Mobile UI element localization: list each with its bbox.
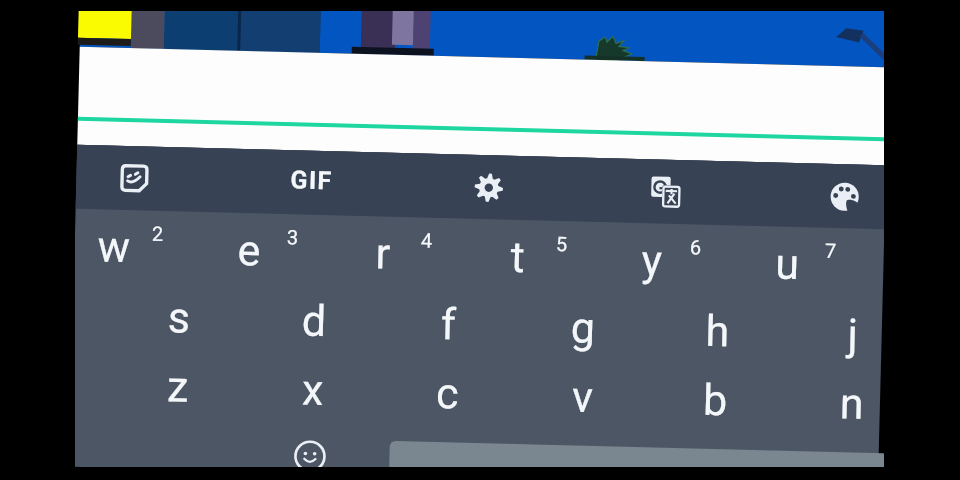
button[interactable]: z <box>142 360 213 420</box>
button[interactable]: 4 <box>411 228 443 256</box>
button[interactable]: r <box>348 228 418 287</box>
staticText: d <box>301 295 327 346</box>
staticText: z <box>166 361 190 412</box>
staticText: h <box>705 306 730 356</box>
button[interactable]: Settings <box>474 173 504 203</box>
button[interactable]: w <box>79 221 149 281</box>
button[interactable]: f <box>413 298 483 358</box>
button[interactable]: 5 <box>545 232 578 259</box>
button[interactable]: 6 <box>679 235 712 263</box>
staticText: n <box>839 378 865 429</box>
button[interactable]: n <box>816 378 884 437</box>
button[interactable]: Stickers <box>120 164 149 193</box>
button[interactable]: d <box>279 295 349 355</box>
button[interactable]: s <box>144 292 214 351</box>
staticText: c <box>435 368 460 419</box>
button[interactable]: t <box>483 231 553 291</box>
staticText: f <box>440 299 456 349</box>
button[interactable]: b <box>680 374 751 434</box>
staticText: 3 <box>287 225 299 248</box>
staticText: b <box>702 375 729 425</box>
button[interactable]: 2 <box>142 221 174 249</box>
button[interactable]: Theme <box>830 182 859 212</box>
button[interactable]: Emoji <box>293 439 327 467</box>
staticText: x <box>301 365 325 415</box>
button[interactable]: h <box>682 305 752 365</box>
staticText: t <box>510 232 526 282</box>
staticText: e <box>237 225 261 275</box>
staticText: j <box>847 309 859 360</box>
staticText: 6 <box>690 235 702 259</box>
button[interactable]: Translate <box>651 176 681 208</box>
staticText: u <box>775 238 800 289</box>
staticText: 7 <box>824 239 837 262</box>
staticText: y <box>641 235 663 286</box>
button[interactable]: j <box>818 309 884 368</box>
button[interactable]: y <box>617 234 687 294</box>
button[interactable]: 7 <box>814 238 847 266</box>
staticText: 2 <box>152 222 164 245</box>
button[interactable]: e <box>214 224 284 284</box>
staticText: v <box>571 371 594 422</box>
button[interactable]: GIF <box>266 155 357 205</box>
button[interactable]: v <box>547 371 618 430</box>
button[interactable]: x <box>277 364 348 424</box>
staticText: 4 <box>421 228 433 252</box>
staticText: w <box>97 221 131 272</box>
staticText: 5 <box>556 232 568 255</box>
button[interactable]: 3 <box>277 225 309 253</box>
button[interactable]: g <box>548 302 618 361</box>
button[interactable]: c <box>412 367 483 427</box>
button[interactable]: u <box>752 238 822 298</box>
staticText: s <box>167 292 192 343</box>
staticText: GIF <box>290 165 334 195</box>
staticText: r <box>375 228 391 279</box>
staticText: g <box>570 302 596 353</box>
